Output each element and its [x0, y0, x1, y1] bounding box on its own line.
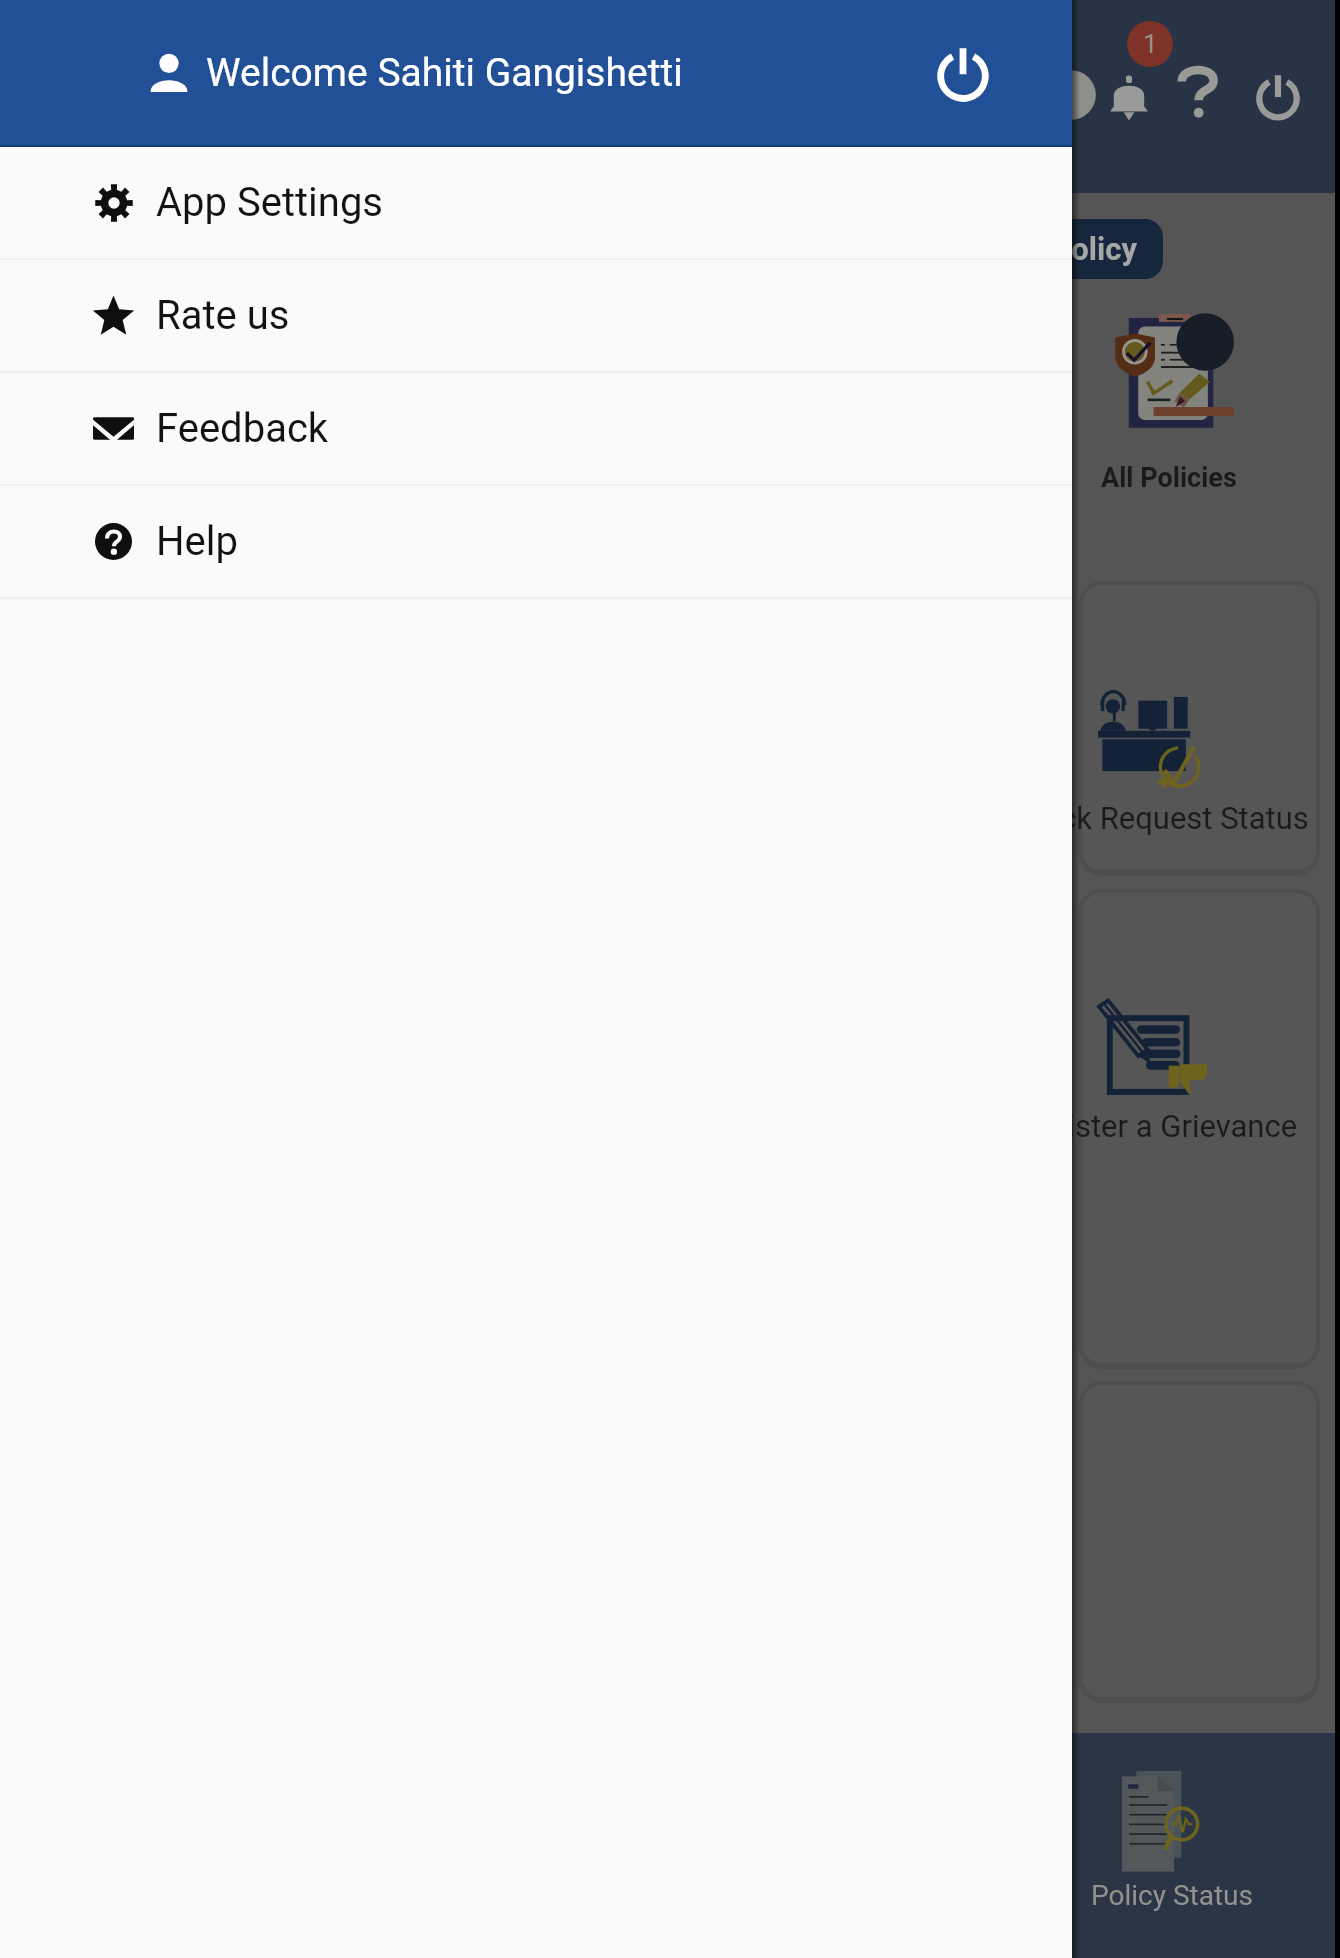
button[interactable]: Help — [0, 486, 1072, 599]
staticText: Feedback — [156, 405, 329, 452]
button[interactable]: Notifications — [1100, 62, 1158, 132]
staticText: All Policies — [1101, 462, 1237, 494]
staticText: ck Request Status — [1060, 800, 1309, 836]
staticText: 1 — [1143, 29, 1158, 59]
button[interactable]: Help — [1170, 56, 1226, 128]
staticText: Policy Status — [1091, 1879, 1253, 1912]
button[interactable]: Policy Status — [1072, 1733, 1335, 1958]
button[interactable]: Register a Grievance — [1082, 893, 1316, 1363]
staticText: Help — [156, 518, 238, 565]
staticText: jister a Grievance — [1060, 1108, 1298, 1144]
button[interactable]: My Policy — [975, 219, 1163, 279]
button[interactable]: Track Request Status — [1082, 585, 1316, 870]
button[interactable]: Profile — [1036, 60, 1106, 130]
staticText: My Policy — [1001, 231, 1137, 267]
button[interactable]: Rate us — [0, 260, 1072, 373]
staticText: App Settings — [156, 179, 383, 226]
button[interactable]: Logout — [932, 42, 994, 104]
button[interactable]: Logout — [1242, 60, 1314, 132]
button[interactable]: App Settings — [0, 147, 1072, 260]
button[interactable]: Feedback — [0, 373, 1072, 486]
staticText: Welcome Sahiti Gangishetti — [206, 50, 683, 96]
button[interactable]: All Policies — [1082, 290, 1316, 570]
staticText: Rate us — [156, 292, 290, 339]
